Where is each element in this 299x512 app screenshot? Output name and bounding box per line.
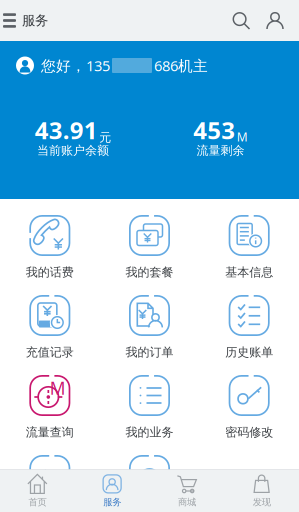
staticText: 我的话费	[26, 265, 74, 280]
staticText: 流量剩余	[196, 143, 244, 158]
staticText: 元	[99, 130, 111, 145]
button[interactable]: 服务	[75, 469, 150, 512]
button[interactable]: 发现	[224, 469, 299, 512]
button[interactable]: 密码修改	[199, 375, 299, 455]
staticText: 首页	[28, 496, 46, 508]
staticText: 历史账单	[225, 345, 273, 360]
button[interactable]: Menu	[0, 0, 16, 41]
button[interactable]: 充值记录	[0, 295, 100, 375]
staticText: 我的订单	[125, 345, 173, 360]
staticText: 流量查询	[26, 425, 74, 440]
button[interactable]: 商城	[149, 469, 224, 512]
button[interactable]: 我的话费	[0, 215, 100, 295]
staticText: 服务	[22, 12, 48, 29]
staticText: 453	[193, 114, 235, 146]
staticText: 基本信息	[225, 265, 273, 280]
staticText: 686机主	[154, 56, 208, 75]
button[interactable]: 返回	[0, 455, 100, 512]
button[interactable]: 我的套餐	[100, 215, 199, 295]
staticText: 商城	[178, 496, 196, 508]
staticText: 服务	[103, 496, 121, 508]
button[interactable]: 首页	[0, 469, 75, 512]
staticText: 充值记录	[26, 345, 74, 360]
button[interactable]: M	[0, 375, 100, 455]
button[interactable]: Account	[258, 0, 292, 41]
staticText: 发现	[253, 496, 271, 508]
staticText: M	[237, 129, 248, 145]
button[interactable]: 基本信息	[199, 215, 299, 295]
button[interactable]: 历史账单	[199, 295, 299, 375]
staticText: 密码修改	[225, 425, 273, 440]
staticText: 您好，135	[41, 56, 110, 75]
staticText: M	[50, 376, 66, 399]
staticText: 我的业务	[125, 425, 173, 440]
button[interactable]: 我的订单	[100, 295, 199, 375]
button[interactable]: 热点	[100, 455, 199, 512]
button[interactable]: 我的业务	[100, 375, 199, 455]
button[interactable]: Search	[224, 0, 258, 41]
staticText: 返回	[38, 505, 62, 512]
staticText: 当前账户余额	[37, 143, 109, 158]
staticText: 43.91	[35, 114, 98, 146]
staticText: 我的套餐	[125, 265, 173, 280]
